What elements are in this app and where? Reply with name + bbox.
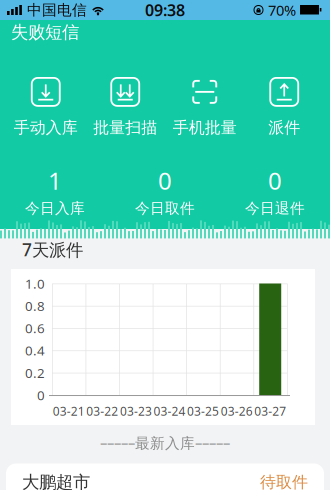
- staticText: 1.0: [25, 275, 45, 292]
- staticText: 03-22: [86, 403, 118, 419]
- staticText: 失败短信: [11, 22, 79, 43]
- staticText: 0.6: [25, 319, 45, 337]
- button[interactable]: 派件: [244, 78, 324, 138]
- staticText: 70%: [268, 0, 296, 20]
- staticText: 今日退件: [245, 199, 305, 217]
- staticText: 手机批量: [173, 118, 237, 138]
- staticText: 03-24: [153, 403, 185, 419]
- staticText: 0.2: [25, 364, 45, 382]
- staticText: 03-25: [187, 403, 219, 419]
- button[interactable]: 批量扫描: [85, 78, 165, 138]
- staticText: 7天派件: [22, 238, 83, 261]
- staticText: 中国电信: [27, 1, 87, 19]
- button[interactable]: 手机批量: [165, 78, 244, 138]
- staticText: 09:38: [145, 0, 185, 21]
- staticText: 1: [48, 164, 62, 196]
- staticText: 今日入库: [25, 199, 85, 217]
- button[interactable]: 大鹏超市: [0, 463, 330, 490]
- staticText: 0.8: [25, 297, 45, 315]
- staticText: 03-21: [53, 403, 85, 419]
- staticText: 03-23: [120, 403, 152, 419]
- staticText: –––––最新入库–––––: [100, 433, 230, 452]
- button[interactable]: 手动入库: [6, 78, 85, 138]
- staticText: 0: [268, 164, 282, 196]
- staticText: 03-27: [254, 403, 286, 419]
- staticText: 0: [37, 386, 45, 404]
- staticText: 派件: [268, 118, 300, 138]
- staticText: 批量扫描: [93, 118, 157, 138]
- staticText: 大鹏超市: [22, 471, 90, 490]
- staticText: 0: [158, 164, 172, 196]
- staticText: 0.4: [25, 342, 45, 359]
- button[interactable]: 失败短信: [0, 22, 330, 43]
- staticText: 待取件: [260, 472, 308, 490]
- staticText: 手动入库: [14, 118, 78, 138]
- staticText: 今日取件: [135, 199, 195, 217]
- staticText: 03-26: [221, 403, 253, 419]
